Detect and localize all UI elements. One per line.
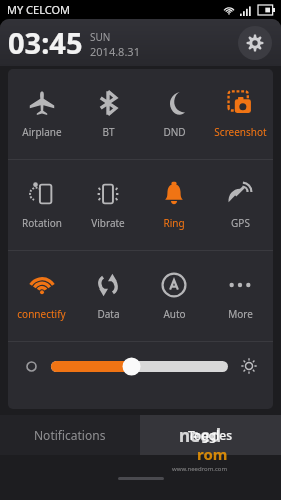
staticText: GPS xyxy=(231,216,250,230)
staticText: Auto xyxy=(163,307,186,321)
staticText: Vibrate xyxy=(91,216,125,230)
button[interactable]: More xyxy=(207,251,273,341)
button[interactable]: Ring xyxy=(141,160,207,250)
button[interactable]: Toggles xyxy=(140,415,281,455)
staticText: need xyxy=(179,424,222,447)
button[interactable]: Rotation xyxy=(8,160,75,250)
button[interactable]: Auto brightness xyxy=(21,356,41,376)
button[interactable]: Max brightness xyxy=(238,355,260,377)
button[interactable]: connectify xyxy=(8,251,75,341)
staticText: SUN xyxy=(90,30,111,44)
button[interactable]: Notifications xyxy=(0,415,140,455)
staticText: DND xyxy=(163,125,186,139)
button[interactable]: GPS xyxy=(207,160,273,250)
staticText: Data xyxy=(97,307,120,321)
staticText: Ring xyxy=(163,216,185,230)
staticText: 2014.8.31 xyxy=(90,44,140,59)
button[interactable]: Data xyxy=(75,251,141,341)
button[interactable]: BT xyxy=(75,69,141,159)
staticText: BT xyxy=(102,125,115,139)
button[interactable]: Screenshot xyxy=(207,69,273,159)
button[interactable]: Airplane xyxy=(8,69,75,159)
staticText: Airplane xyxy=(22,125,62,139)
staticText: More xyxy=(228,307,253,321)
button[interactable]: Settings xyxy=(238,26,272,60)
staticText: www.needrom.com xyxy=(172,465,228,473)
staticText: Rotation xyxy=(22,216,62,230)
staticText: Notifications xyxy=(34,427,106,443)
button[interactable]: Vibrate xyxy=(75,160,141,250)
staticText: 03:45 xyxy=(8,23,83,62)
button[interactable]: Brightness slider xyxy=(51,351,228,381)
staticText: rom xyxy=(197,444,228,464)
staticText: connectify xyxy=(17,307,66,321)
button[interactable]: DND xyxy=(141,69,207,159)
staticText: Screenshot xyxy=(214,125,267,139)
staticText: MY CELCOM xyxy=(7,2,70,17)
button[interactable]: Auto xyxy=(141,251,207,341)
staticText: Toggles xyxy=(188,427,233,443)
